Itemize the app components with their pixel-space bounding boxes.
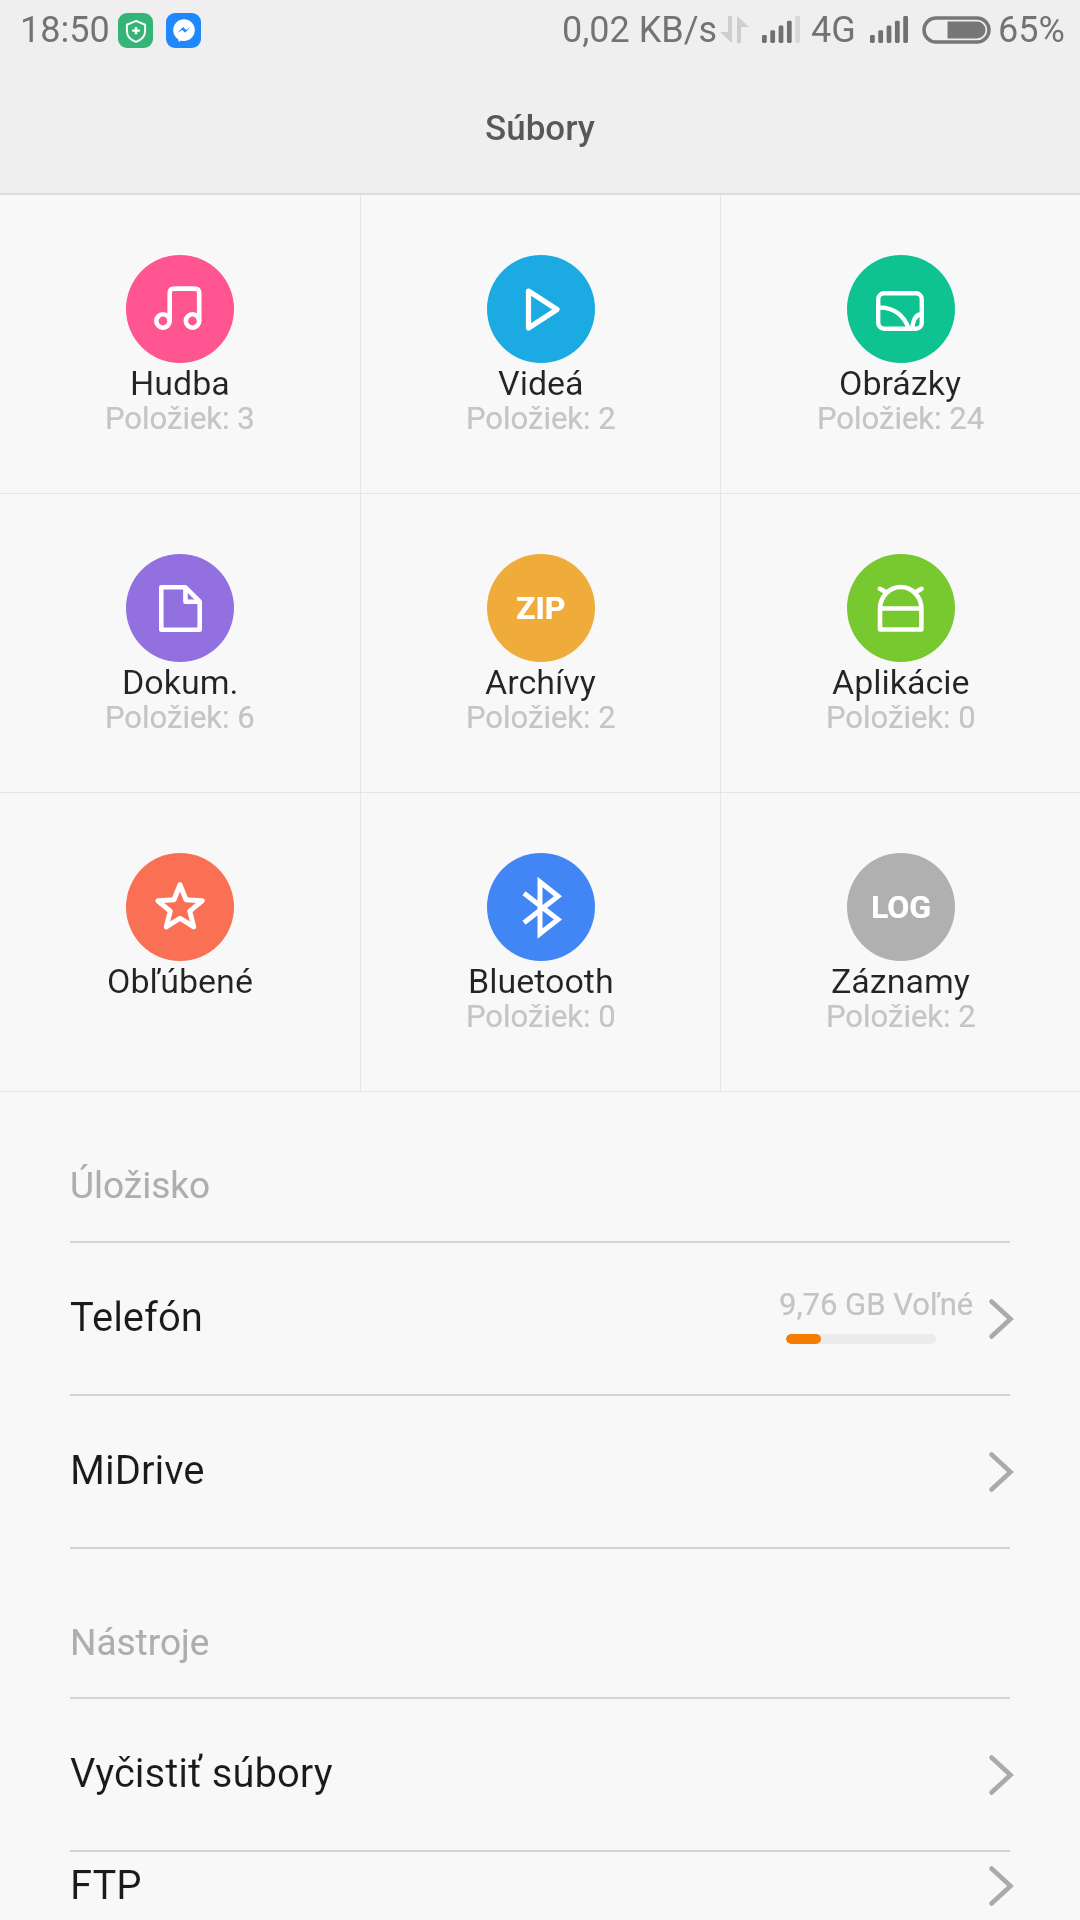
staticText: Záznamy: [831, 961, 970, 1001]
staticText: Telefón: [70, 1294, 203, 1341]
staticText: Nástroje: [70, 1621, 210, 1664]
staticText: LOG: [871, 888, 932, 926]
button[interactable]: Telefón: [0, 1243, 1080, 1394]
staticText: 65%: [998, 9, 1065, 51]
staticText: Hudba: [130, 363, 230, 403]
button[interactable]: Bluetooth: [361, 793, 720, 1091]
staticText: Obľúbené: [107, 961, 253, 1001]
staticText: 18:50: [20, 9, 110, 51]
staticText: FTP: [70, 1862, 142, 1909]
staticText: Obrázky: [839, 363, 962, 403]
staticText: Aplikácie: [832, 662, 970, 702]
staticText: Bluetooth: [468, 961, 614, 1001]
button[interactable]: Obľúbené: [0, 793, 360, 1091]
staticText: Súbory: [485, 108, 596, 149]
button[interactable]: Hudba: [0, 195, 360, 493]
staticText: Položiek: 0: [826, 699, 976, 735]
staticText: Položiek: 3: [105, 400, 255, 436]
button[interactable]: LOG: [721, 793, 1080, 1091]
staticText: Položiek: 2: [466, 699, 616, 735]
staticText: Dokum.: [122, 662, 239, 702]
staticText: Položiek: 24: [817, 400, 985, 436]
staticText: Položiek: 0: [466, 998, 616, 1034]
button[interactable]: FTP: [0, 1852, 1080, 1920]
staticText: Videá: [498, 363, 584, 403]
button[interactable]: ZIP: [361, 494, 720, 792]
button[interactable]: Obrázky: [721, 195, 1080, 493]
staticText: MiDrive: [70, 1447, 205, 1494]
button[interactable]: Dokum.: [0, 494, 360, 792]
button[interactable]: Vyčistiť súbory: [0, 1699, 1080, 1850]
button[interactable]: MiDrive: [0, 1396, 1080, 1547]
staticText: Vyčistiť súbory: [70, 1750, 333, 1797]
staticText: Úložisko: [70, 1164, 211, 1207]
button[interactable]: Aplikácie: [721, 494, 1080, 792]
staticText: 9,76 GB Voľné: [779, 1286, 974, 1322]
staticText: Položiek: 2: [826, 998, 976, 1034]
staticText: ZIP: [516, 589, 566, 627]
button[interactable]: Videá: [361, 195, 720, 493]
staticText: 4G: [811, 9, 856, 51]
staticText: Položiek: 6: [105, 699, 255, 735]
staticText: 0,02 KB/s: [562, 9, 718, 51]
staticText: Archívy: [485, 662, 596, 702]
staticText: Položiek: 2: [466, 400, 616, 436]
